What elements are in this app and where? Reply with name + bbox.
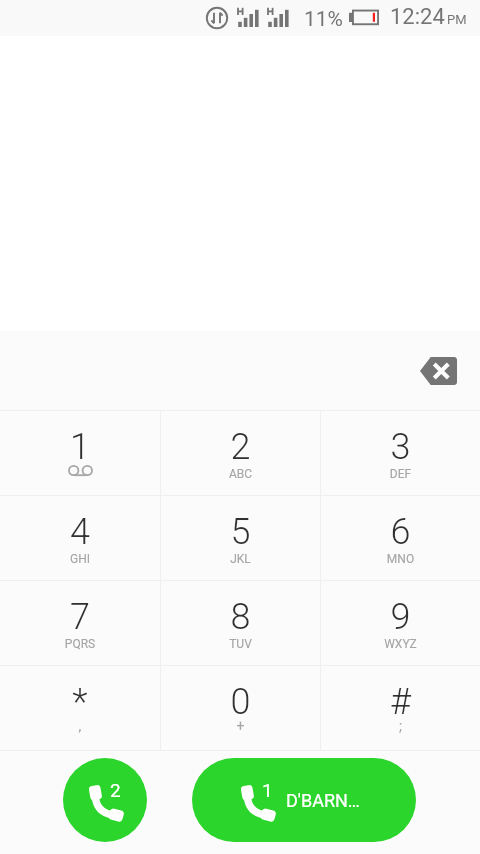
staticText: ; bbox=[321, 718, 480, 734]
staticText: 11% bbox=[304, 7, 343, 32]
button[interactable]: 5 bbox=[161, 496, 320, 580]
staticText: PM bbox=[447, 12, 467, 27]
staticText: 6 bbox=[321, 511, 480, 553]
staticText: TUV bbox=[161, 637, 320, 651]
button[interactable]: # bbox=[321, 666, 480, 750]
staticText: + bbox=[161, 718, 320, 734]
button[interactable]: 7 bbox=[0, 581, 160, 665]
staticText: JKL bbox=[161, 552, 320, 566]
staticText: , bbox=[0, 718, 160, 734]
button[interactable]: * bbox=[0, 666, 160, 750]
staticText: 0 bbox=[161, 681, 320, 723]
button[interactable]: 2 bbox=[161, 411, 320, 495]
staticText: 1 bbox=[262, 779, 273, 801]
button[interactable]: 6 bbox=[321, 496, 480, 580]
staticText: 2 bbox=[161, 426, 320, 468]
button[interactable]: 0 bbox=[161, 666, 320, 750]
staticText: 3 bbox=[321, 426, 480, 468]
button[interactable]: 9 bbox=[321, 581, 480, 665]
staticText: 12:24 bbox=[390, 4, 445, 30]
staticText: DEF bbox=[321, 467, 480, 481]
staticText: 4 bbox=[0, 511, 160, 553]
staticText: D'BARN… bbox=[286, 790, 360, 811]
staticText: 7 bbox=[0, 596, 160, 638]
staticText: # bbox=[321, 681, 480, 723]
staticText: WXYZ bbox=[321, 637, 480, 651]
staticText: 9 bbox=[321, 596, 480, 638]
staticText: 8 bbox=[161, 596, 320, 638]
staticText: * bbox=[0, 681, 160, 723]
staticText: MNO bbox=[321, 552, 480, 566]
button[interactable]: 4 bbox=[0, 496, 160, 580]
button[interactable]: Call with SIM 2 bbox=[63, 758, 147, 842]
button[interactable]: 8 bbox=[161, 581, 320, 665]
staticText: 2 bbox=[110, 779, 121, 801]
staticText: 1 bbox=[0, 426, 160, 468]
button[interactable]: Backspace bbox=[412, 345, 464, 397]
staticText: PQRS bbox=[0, 637, 160, 651]
staticText: GHI bbox=[0, 552, 160, 566]
staticText: ABC bbox=[161, 467, 320, 481]
staticText: 5 bbox=[161, 511, 320, 553]
button[interactable]: 1 bbox=[0, 411, 160, 495]
button[interactable]: 1 bbox=[192, 758, 416, 842]
button[interactable]: 3 bbox=[321, 411, 480, 495]
